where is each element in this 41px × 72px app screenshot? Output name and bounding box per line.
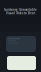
staticText: Visual Tricks to Beat	[6, 11, 35, 15]
staticText: Guidance Unavailable	[4, 8, 37, 11]
